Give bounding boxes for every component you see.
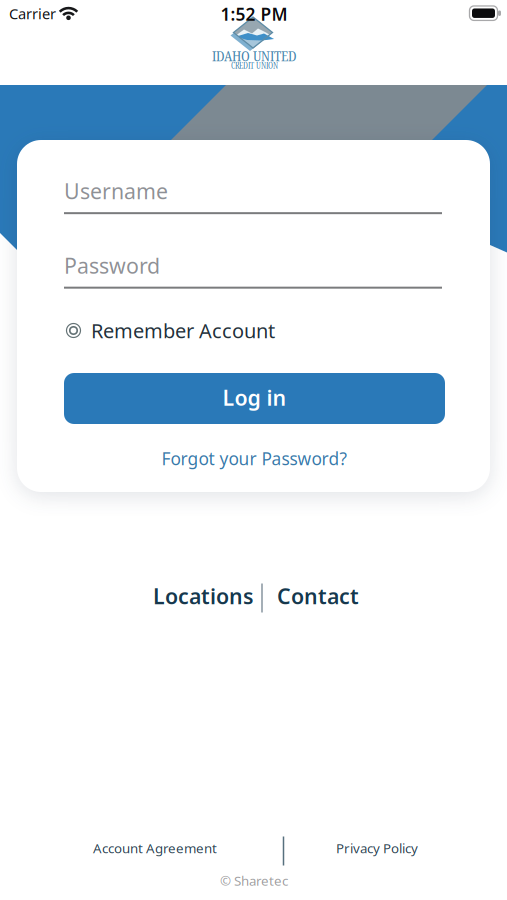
button[interactable]: Locations — [54, 582, 254, 610]
staticText: CREDIT UNION — [231, 60, 278, 71]
button[interactable]: Password — [64, 251, 445, 289]
staticText: Locations — [153, 582, 254, 610]
button[interactable]: Username — [64, 177, 445, 214]
staticText: Contact — [277, 582, 359, 610]
staticText: Forgot your Password? — [161, 447, 347, 470]
staticText: IDAHO UNITED — [212, 45, 297, 65]
staticText: Account Agreement — [93, 839, 217, 857]
button[interactable]: Privacy Policy — [336, 839, 418, 857]
staticText: Privacy Policy — [336, 839, 418, 857]
staticText: Remember Account — [91, 317, 275, 344]
button[interactable]: Log in — [64, 373, 445, 424]
button[interactable]: Remember Account — [64, 317, 445, 344]
button[interactable]: Account Agreement — [93, 839, 217, 857]
button[interactable]: Contact — [277, 582, 477, 610]
staticText: Carrier — [9, 4, 56, 23]
staticText: © Sharetec — [220, 872, 288, 889]
button[interactable]: Forgot your Password? — [161, 447, 347, 470]
staticText: Log in — [222, 383, 286, 412]
staticText: Password — [64, 251, 160, 280]
staticText: Username — [64, 177, 168, 205]
staticText: 1:52 PM — [220, 2, 287, 25]
